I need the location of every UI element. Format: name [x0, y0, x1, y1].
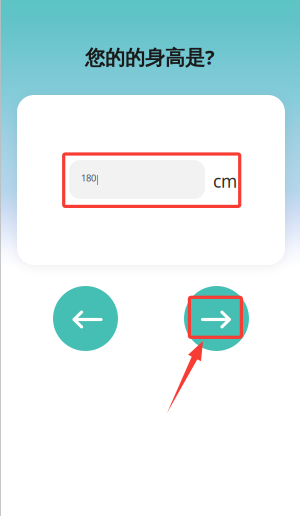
staticText: 您的的身高是? [85, 44, 215, 70]
staticText: 180 [81, 172, 96, 184]
staticText: cm [213, 169, 237, 192]
button[interactable]: Back [53, 286, 118, 351]
button[interactable]: Next [184, 286, 249, 351]
